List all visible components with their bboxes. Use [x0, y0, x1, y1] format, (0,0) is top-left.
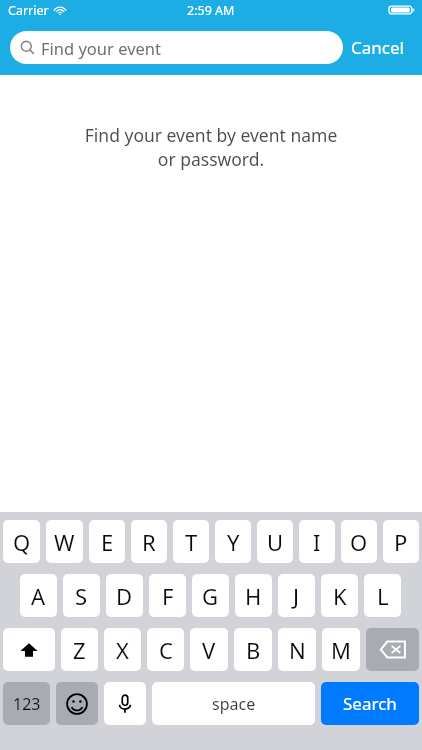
staticText: F [162, 581, 174, 611]
staticText: Q [13, 527, 31, 557]
button[interactable]: space [152, 682, 315, 725]
staticText: K [333, 581, 347, 611]
staticText: V [202, 635, 216, 665]
button[interactable]: E [89, 520, 125, 563]
button[interactable]: W [46, 520, 83, 563]
staticText: 123 [13, 693, 41, 715]
staticText: U [267, 527, 284, 557]
staticText: A [31, 581, 46, 611]
staticText: Carrier [8, 2, 49, 19]
button[interactable]: Shift [3, 628, 55, 671]
staticText: Y [227, 527, 240, 557]
staticText: B [246, 635, 261, 665]
staticText: X [116, 635, 129, 665]
button[interactable]: Dictate [104, 682, 146, 725]
button[interactable]: L [364, 574, 401, 617]
staticText: C [159, 635, 173, 665]
button[interactable]: G [192, 574, 229, 617]
button[interactable]: R [131, 520, 167, 563]
staticText: D [116, 581, 133, 611]
staticText: S [75, 581, 88, 611]
button[interactable]: I [299, 520, 335, 563]
button[interactable]: M [322, 628, 360, 671]
staticText: L [377, 581, 389, 611]
staticText: Find your event by event name or passwor… [40, 123, 382, 171]
button[interactable]: Y [215, 520, 251, 563]
button[interactable]: Delete [366, 628, 419, 671]
staticText: E [101, 527, 114, 557]
button[interactable]: O [341, 520, 377, 563]
staticText: Z [73, 635, 86, 665]
staticText: H [245, 581, 262, 611]
staticText: 2:59 AM [187, 2, 235, 19]
staticText: O [350, 527, 368, 557]
staticText: R [142, 527, 156, 557]
button[interactable]: Find your event [10, 31, 343, 64]
button[interactable]: H [235, 574, 272, 617]
staticText: P [394, 527, 408, 557]
button[interactable]: C [147, 628, 184, 671]
button[interactable]: K [321, 574, 358, 617]
staticText: T [185, 527, 198, 557]
staticText: I [313, 527, 321, 557]
staticText: Cancel [351, 36, 404, 59]
button[interactable]: Cancel [343, 30, 412, 65]
button[interactable]: N [278, 628, 316, 671]
button[interactable]: 123 [3, 682, 50, 725]
button[interactable]: F [149, 574, 186, 617]
button[interactable]: S [63, 574, 100, 617]
staticText: N [289, 635, 306, 665]
button[interactable]: D [106, 574, 143, 617]
button[interactable]: V [190, 628, 228, 671]
button[interactable]: J [278, 574, 315, 617]
staticText: Search [343, 692, 397, 715]
staticText: M [331, 635, 351, 665]
staticText: J [293, 581, 300, 611]
staticText: space [212, 693, 256, 715]
button[interactable]: A [20, 574, 57, 617]
staticText: G [202, 581, 219, 611]
button[interactable]: Search [321, 682, 419, 725]
button[interactable]: P [383, 520, 419, 563]
button[interactable]: X [104, 628, 141, 671]
staticText: Find your event [41, 37, 161, 59]
button[interactable]: Q [3, 520, 40, 563]
button[interactable]: Emoji [56, 682, 98, 725]
staticText: W [54, 527, 75, 557]
button[interactable]: Z [61, 628, 98, 671]
button[interactable]: B [234, 628, 272, 671]
button[interactable]: U [257, 520, 293, 563]
button[interactable]: T [173, 520, 209, 563]
